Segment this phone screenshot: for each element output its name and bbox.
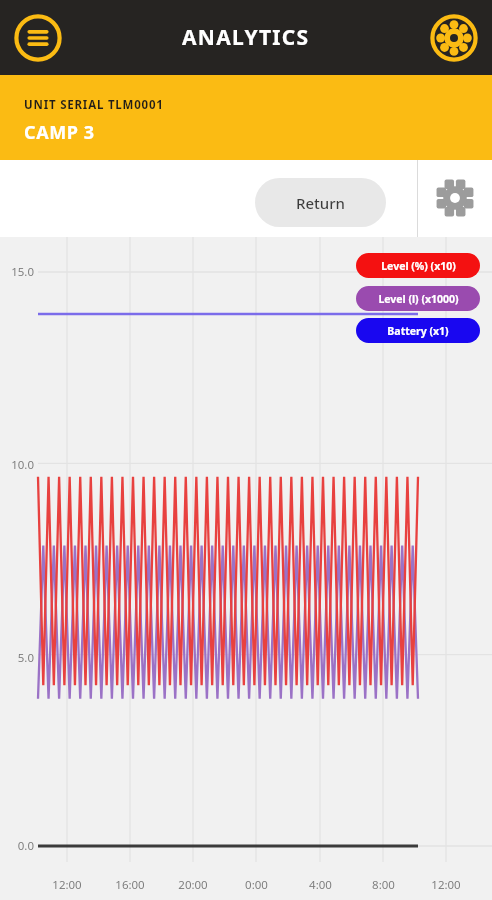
staticText: 15.0 — [11, 264, 34, 280]
staticText: 12:00 — [431, 877, 461, 893]
staticText: 20:00 — [178, 877, 208, 893]
staticText: ANALYTICS — [182, 23, 310, 52]
button[interactable]: Settings — [426, 10, 482, 66]
button[interactable]: Level (l) (x1000) — [356, 286, 480, 311]
button[interactable]: Return — [255, 178, 386, 227]
staticText: 5.0 — [17, 650, 34, 666]
staticText: 4:00 — [309, 877, 332, 893]
staticText: 0.0 — [17, 838, 34, 854]
staticText: Level (%) (x10) — [381, 259, 456, 273]
staticText: UNIT SERIAL TLM0001 — [24, 97, 164, 113]
button[interactable]: Level (%) (x10) — [356, 253, 480, 278]
staticText: 10.0 — [11, 457, 34, 473]
staticText: Return — [296, 193, 345, 213]
staticText: 0:00 — [245, 877, 268, 893]
button[interactable]: Battery (x1) — [356, 318, 480, 343]
button[interactable]: Open navigation menu — [10, 10, 66, 66]
button[interactable]: Chart settings — [427, 170, 483, 226]
staticText: 16:00 — [115, 877, 145, 893]
staticText: 8:00 — [372, 877, 395, 893]
staticText: CAMP 3 — [24, 120, 95, 145]
staticText: Level (l) (x1000) — [378, 292, 459, 306]
staticText: 12:00 — [52, 877, 82, 893]
staticText: Battery (x1) — [387, 324, 449, 338]
